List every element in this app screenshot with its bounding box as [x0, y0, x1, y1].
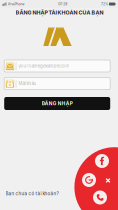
staticText: ĐĂNG NHẬP	[42, 101, 73, 106]
button[interactable]: Mật khẩu	[4, 77, 110, 89]
staticText: yourname@example.com	[18, 63, 69, 69]
staticText: 72%	[101, 2, 108, 6]
staticText: ĐĂNG NHẬP TÀI KHOẢN CỦA BẠN	[15, 9, 103, 16]
staticText: 07:28	[58, 2, 67, 6]
staticText: VinaPhone	[7, 2, 24, 6]
button[interactable]: Sign in with Google	[82, 173, 96, 187]
staticText: Bạn chưa có tài khoản?	[5, 191, 58, 196]
button[interactable]: Sign in with Facebook	[95, 154, 109, 168]
button[interactable]: Sign in with phone number	[93, 190, 107, 204]
button[interactable]: Email address	[4, 60, 110, 72]
button[interactable]: ĐĂNG NHẬP	[4, 97, 110, 110]
staticText: Mật khẩu	[18, 81, 36, 86]
button[interactable]: Bạn chưa có tài khoản?	[5, 191, 58, 196]
button[interactable]: Close	[103, 175, 113, 185]
